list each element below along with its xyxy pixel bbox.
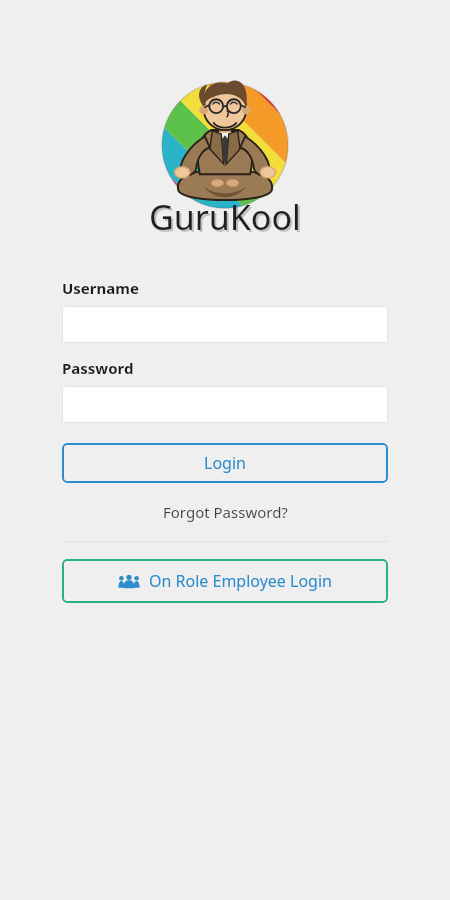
staticText: Username: [62, 278, 139, 298]
staticText: GuruKool: [151, 196, 303, 242]
staticText: GuruKool: [149, 194, 301, 240]
button[interactable]: Login: [62, 443, 388, 483]
staticText: On Role Employee Login: [149, 570, 332, 592]
button[interactable]: [62, 386, 388, 423]
staticText: Forgot Password?: [163, 502, 288, 522]
staticText: Login: [204, 452, 246, 474]
button[interactable]: On Role Employee Login: [62, 559, 388, 603]
button[interactable]: [62, 306, 388, 343]
staticText: Password: [62, 358, 134, 378]
button[interactable]: Forgot Password?: [157, 500, 294, 524]
